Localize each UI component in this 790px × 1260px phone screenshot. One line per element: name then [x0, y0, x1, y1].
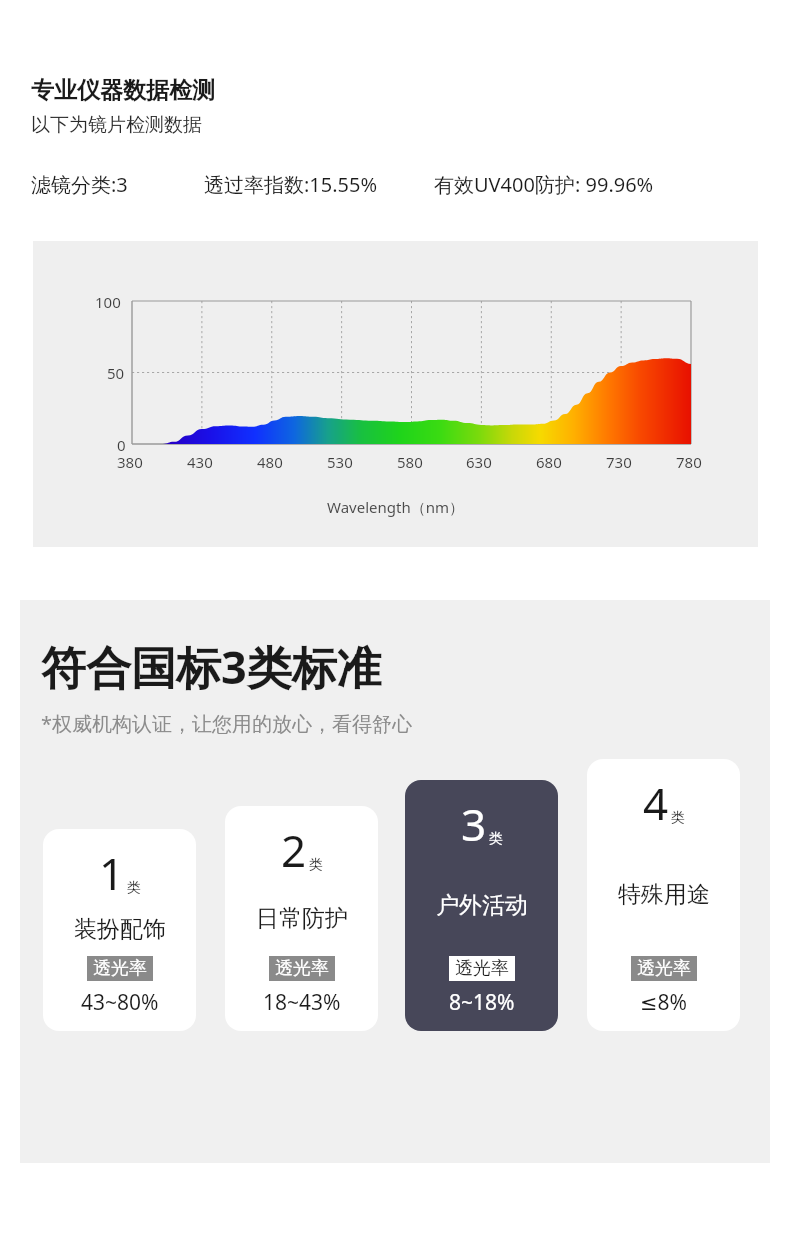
staticText: 透光率 — [455, 957, 509, 980]
staticText: 43~80% — [81, 988, 159, 1017]
staticText: 透光率 — [637, 957, 691, 980]
staticText: 8~18% — [449, 988, 515, 1017]
staticText: 630 — [466, 452, 492, 472]
staticText: 100 — [95, 292, 121, 312]
button[interactable]: 4 — [587, 759, 740, 1031]
staticText: 有效UV400防护: 99.96% — [434, 171, 654, 198]
staticText: 0 — [117, 435, 126, 455]
staticText: 特殊用途 — [618, 880, 710, 909]
staticText: 透光率 — [93, 957, 147, 980]
staticText: 类 — [127, 879, 141, 897]
staticText: 户外活动 — [436, 891, 528, 920]
staticText: Wavelength（nm） — [33, 497, 758, 517]
staticText: 3 — [461, 794, 487, 854]
staticText: 380 — [117, 452, 143, 472]
staticText: 430 — [187, 452, 213, 472]
staticText: 580 — [397, 452, 423, 472]
staticText: 480 — [257, 452, 283, 472]
staticText: 符合国标3类标准 — [41, 636, 382, 697]
button[interactable]: 2 — [225, 806, 378, 1031]
staticText: 50 — [107, 363, 125, 383]
staticText: 日常防护 — [256, 904, 348, 933]
button[interactable]: 3 — [405, 780, 558, 1031]
staticText: 专业仪器数据检测 — [31, 76, 215, 105]
staticText: 装扮配饰 — [74, 915, 166, 944]
staticText: 18~43% — [263, 988, 341, 1017]
staticText: 透光率 — [275, 957, 329, 980]
staticText: 类 — [671, 809, 685, 827]
staticText: 530 — [327, 452, 353, 472]
staticText: 以下为镜片检测数据 — [31, 113, 202, 137]
staticText: 透过率指数:15.55% — [204, 171, 378, 198]
staticText: 780 — [676, 452, 702, 472]
staticText: 滤镜分类:3 — [31, 171, 128, 198]
staticText: ≤8% — [640, 988, 688, 1017]
staticText: 680 — [536, 452, 562, 472]
staticText: 类 — [489, 830, 503, 848]
staticText: 2 — [281, 820, 307, 880]
staticText: 730 — [606, 452, 632, 472]
staticText: *权威机构认证，让您用的放心，看得舒心 — [41, 710, 413, 737]
staticText: 1 — [99, 843, 125, 903]
staticText: 4 — [643, 773, 669, 833]
staticText: 类 — [309, 856, 323, 874]
button[interactable]: 1 — [43, 829, 196, 1031]
